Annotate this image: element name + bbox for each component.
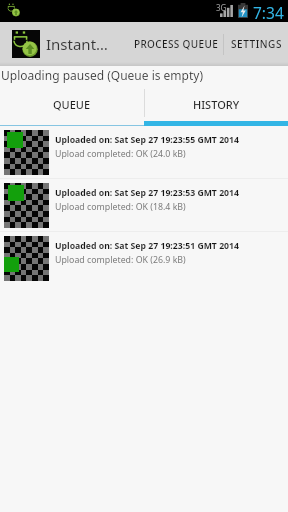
button[interactable]: Uploaded on: Sat Sep 27 19:23:55 GMT 201… [0, 126, 288, 178]
staticText: Upload completed: OK (24.0 kB) [55, 148, 186, 160]
button[interactable]: SETTINGS [224, 22, 288, 66]
staticText: Instant… [46, 34, 108, 54]
staticText: SETTINGS [231, 37, 282, 51]
staticText: HISTORY [193, 97, 240, 112]
button[interactable]: Uploaded on: Sat Sep 27 19:23:53 GMT 201… [0, 179, 288, 231]
staticText: 3G [216, 2, 227, 13]
staticText: Uploaded on: Sat Sep 27 19:23:51 GMT 201… [55, 240, 240, 252]
button[interactable]: PROCESS QUEUE [121, 22, 223, 66]
staticText: Uploading paused (Queue is empty) [1, 67, 204, 83]
staticText: 7:34 [253, 2, 284, 23]
staticText: Uploaded on: Sat Sep 27 19:23:55 GMT 201… [55, 134, 240, 146]
staticText: Upload completed: OK (26.9 kB) [55, 254, 186, 266]
button[interactable]: HISTORY [144, 89, 288, 121]
button[interactable]: QUEUE [0, 89, 144, 121]
staticText: Uploaded on: Sat Sep 27 19:23:53 GMT 201… [55, 187, 240, 199]
staticText: Upload completed: OK (18.4 kB) [55, 201, 186, 213]
staticText: PROCESS QUEUE [134, 37, 219, 51]
button[interactable]: Uploaded on: Sat Sep 27 19:23:51 GMT 201… [0, 232, 288, 284]
staticText: QUEUE [53, 97, 91, 112]
button[interactable]: Instant… [0, 22, 108, 66]
